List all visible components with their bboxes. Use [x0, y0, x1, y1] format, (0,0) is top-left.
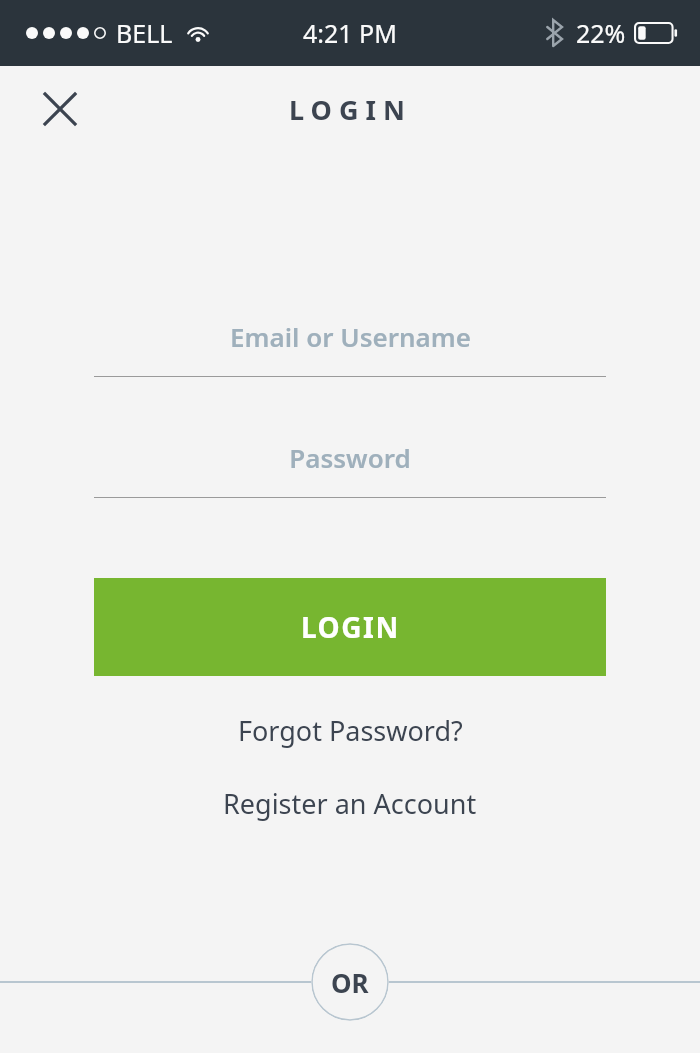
button[interactable]: Password — [94, 433, 606, 498]
button[interactable]: LOGIN — [94, 578, 606, 676]
button[interactable]: Close — [30, 79, 90, 139]
staticText: Forgot Password? — [238, 712, 463, 749]
staticText: OR — [331, 965, 369, 1000]
staticText: Email or Username — [230, 319, 471, 354]
button[interactable]: Email or Username — [94, 312, 606, 377]
staticText: Password — [289, 440, 411, 475]
button[interactable]: Register an Account — [199, 779, 501, 828]
staticText: LOGIN — [301, 608, 400, 646]
button[interactable]: Forgot Password? — [214, 706, 487, 755]
staticText: 4:21 PM — [303, 16, 397, 50]
staticText: LOGIN — [289, 91, 412, 128]
staticText: BELL — [116, 16, 173, 50]
staticText: Register an Account — [223, 785, 477, 822]
staticText: 22% — [576, 16, 626, 50]
